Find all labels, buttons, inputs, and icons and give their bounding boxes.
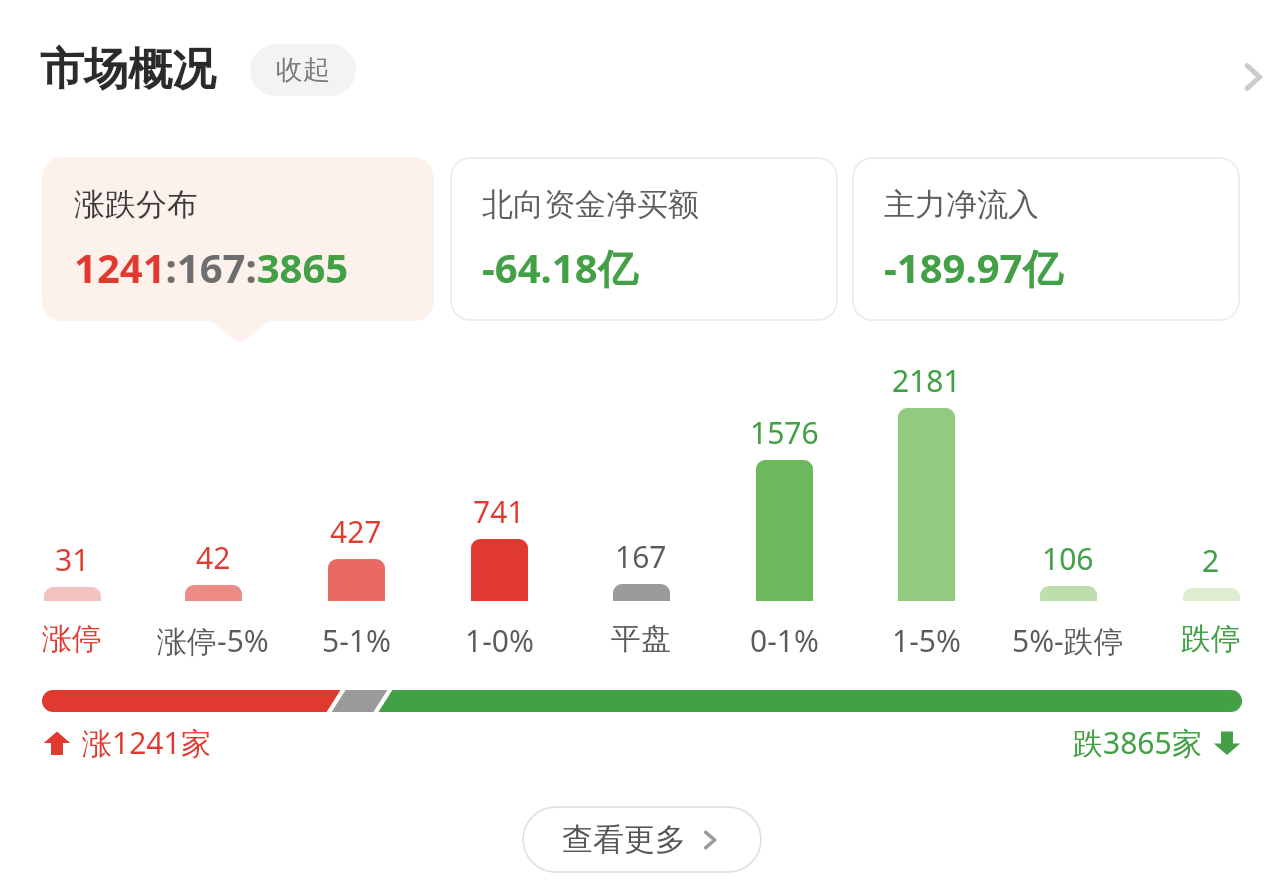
staticText: 跌停	[1181, 620, 1241, 658]
staticText: 市场概况	[40, 42, 216, 97]
staticText: 5%-跌停	[1012, 620, 1124, 661]
staticText: 1241:167:3865	[74, 240, 349, 294]
staticText: 42	[196, 537, 231, 578]
staticText: 涨跌分布	[74, 185, 198, 224]
staticText: 涨1241家	[82, 722, 211, 763]
staticText: 涨停	[42, 620, 102, 658]
staticText: 2	[1202, 540, 1220, 581]
staticText: 1-0%	[465, 620, 534, 661]
staticText: 427	[330, 511, 382, 552]
staticText: 167	[615, 536, 667, 577]
button[interactable]: 跌3865家	[1073, 722, 1242, 763]
staticText: 跌3865家	[1073, 722, 1202, 763]
button[interactable]: 收起	[250, 44, 356, 96]
staticText: 31	[55, 539, 90, 580]
staticText: 北向资金净买额	[482, 185, 699, 224]
button[interactable]: 展开市场概况	[1222, 46, 1284, 108]
button[interactable]: 主力净流入	[852, 157, 1240, 321]
button[interactable]: 涨1241家	[42, 722, 211, 763]
staticText: 平盘	[611, 620, 671, 658]
staticText: 收起	[276, 53, 330, 87]
staticText: 1576	[750, 412, 819, 453]
button[interactable]: 涨跌分布	[42, 157, 434, 321]
staticText: 5-1%	[322, 620, 391, 661]
staticText: 741	[473, 491, 525, 532]
staticText: -64.18亿	[482, 240, 638, 295]
staticText: -189.97亿	[884, 240, 1063, 295]
staticText: 0-1%	[750, 620, 819, 661]
staticText: 查看更多	[562, 820, 686, 859]
staticText: 主力净流入	[884, 185, 1039, 224]
staticText: 2181	[892, 360, 961, 401]
staticText: 1-5%	[892, 620, 961, 661]
staticText: 106	[1042, 538, 1094, 579]
staticText: 涨停-5%	[157, 620, 269, 661]
button[interactable]: 北向资金净买额	[450, 157, 838, 321]
button[interactable]: 查看更多	[522, 806, 762, 873]
